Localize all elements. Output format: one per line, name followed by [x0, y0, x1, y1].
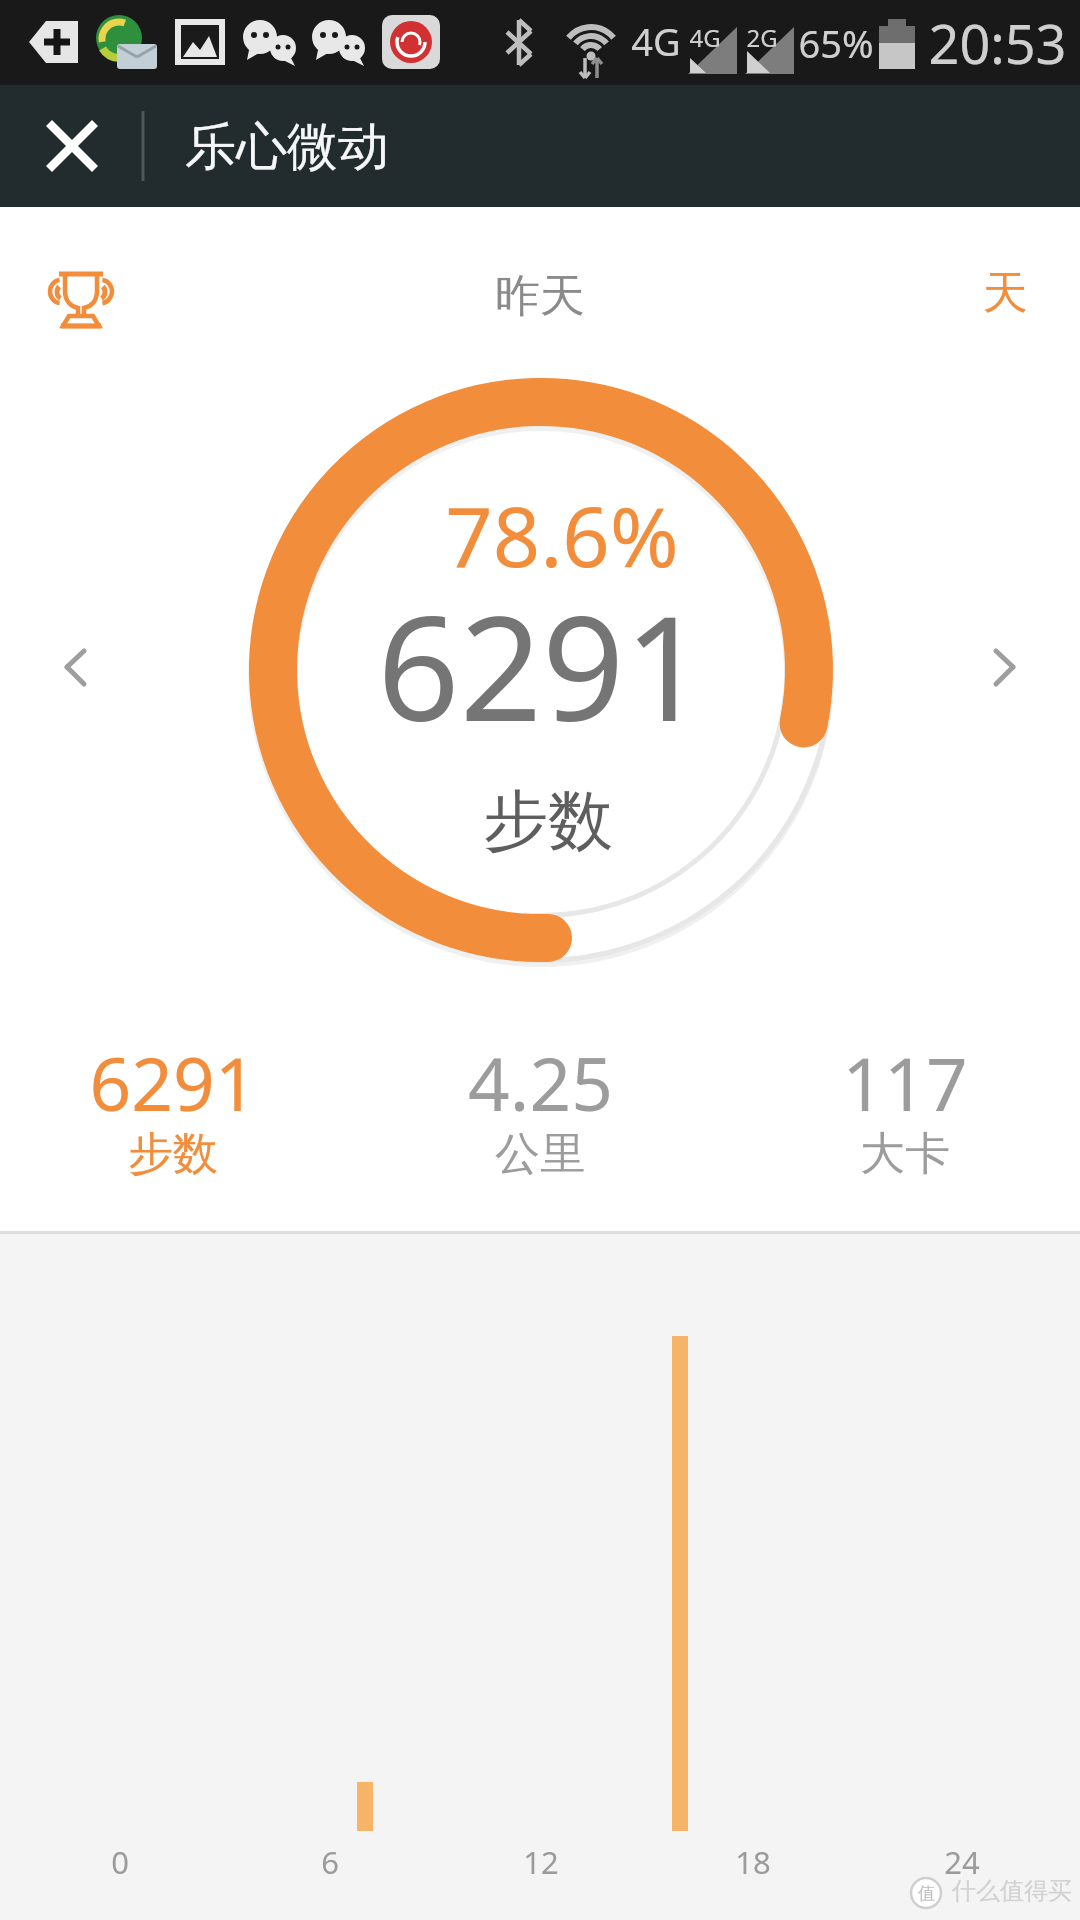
staticText: 12 [523, 1841, 559, 1883]
staticText: 值 [918, 1883, 935, 1904]
button[interactable] [50, 630, 106, 706]
staticText: 昨天 [495, 268, 585, 325]
button[interactable]: 步数 [0, 1100, 473, 1208]
staticText: 乐心微动 [185, 115, 389, 179]
staticText: 天 [983, 265, 1028, 322]
button[interactable] [974, 630, 1030, 706]
button[interactable]: 天 [705, 239, 1080, 347]
staticText: 什么值得买 [952, 1876, 1072, 1906]
staticText: 18 [735, 1841, 771, 1883]
button[interactable]: 大卡 [605, 1100, 1080, 1208]
staticText: 0 [111, 1841, 129, 1883]
staticText: 24 [944, 1841, 980, 1883]
staticText: 步数 [128, 1126, 218, 1183]
staticText: 117 [842, 1033, 968, 1132]
staticText: 4G [631, 15, 681, 67]
staticText: 公里 [495, 1126, 585, 1183]
staticText: 6291 [377, 567, 707, 763]
staticText: 4G [689, 21, 721, 54]
staticText: 4.25 [468, 1033, 613, 1132]
staticText: 65% [798, 17, 874, 69]
button[interactable] [40, 115, 104, 179]
staticText: 20:53 [928, 6, 1067, 80]
staticText: 大卡 [860, 1126, 950, 1183]
staticText: 6 [321, 1841, 339, 1883]
button[interactable]: 公里 [240, 1100, 840, 1208]
staticText: 78.6% [445, 478, 679, 591]
staticText: 2G [746, 21, 778, 54]
staticText: 6291 [89, 1033, 257, 1132]
staticText: 步数 [483, 780, 613, 862]
button[interactable] [40, 265, 120, 337]
